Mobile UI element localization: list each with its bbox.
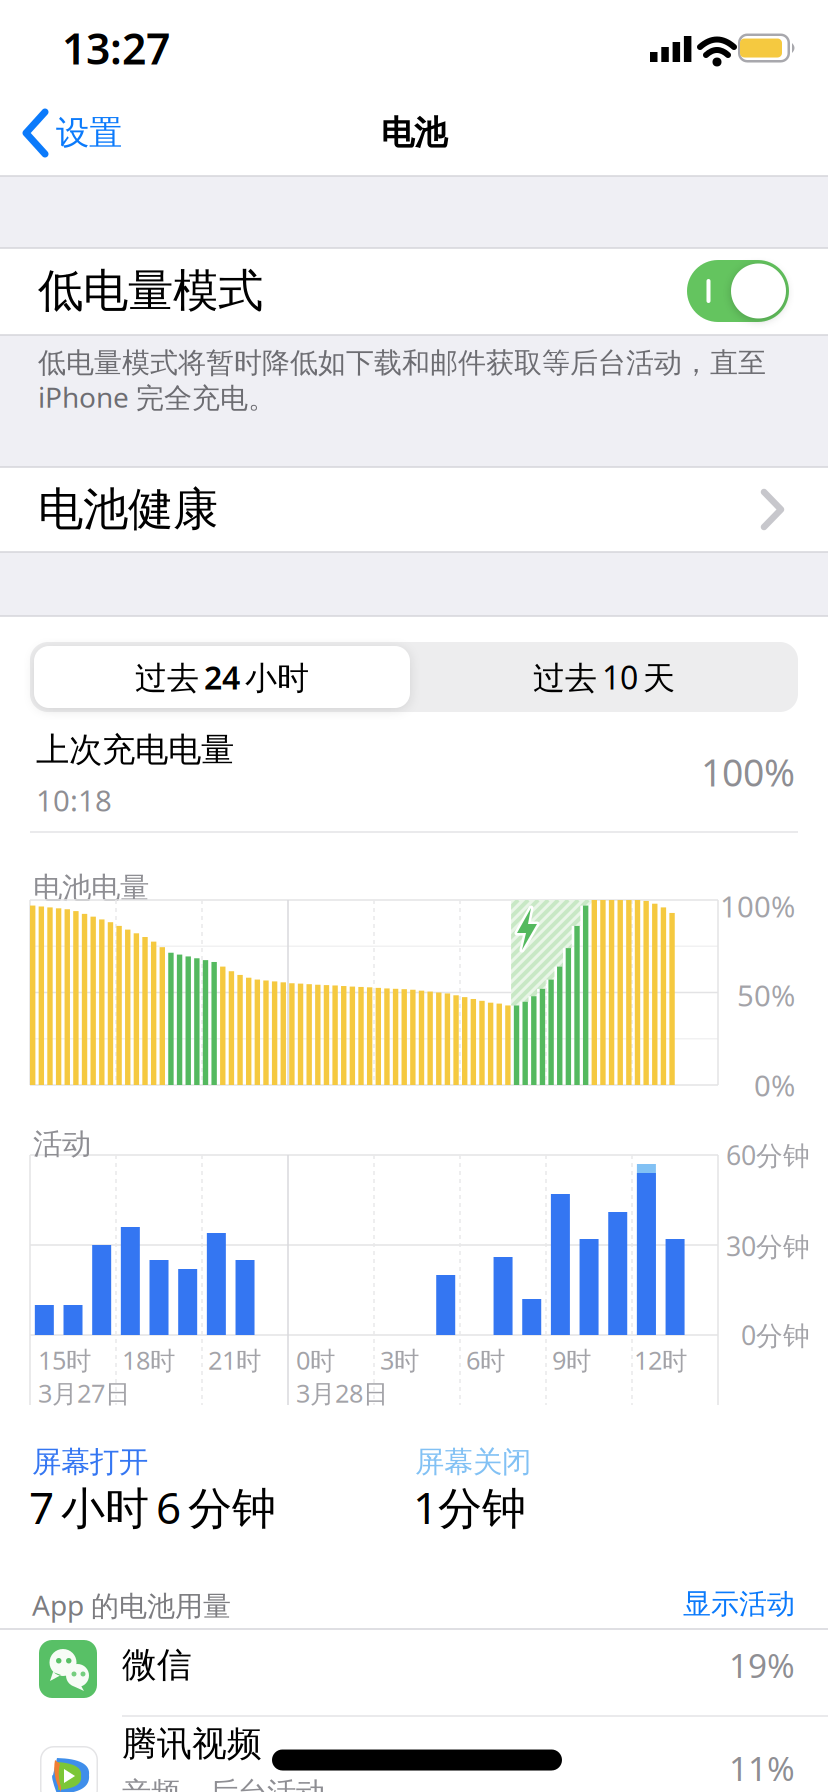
staticText: 显示活动 — [683, 1587, 795, 1621]
staticText: 50% — [737, 975, 795, 1014]
button[interactable]: 低电量模式 — [687, 260, 789, 322]
staticText: 10:18 — [36, 780, 112, 819]
staticText: 13:27 — [62, 20, 170, 76]
staticText: 过去 10 天 — [533, 656, 675, 698]
staticText: 6时 — [466, 1343, 505, 1377]
staticText: 0时 — [296, 1343, 335, 1377]
button[interactable]: 过去 24 小时 — [34, 646, 410, 708]
staticText: 0% — [754, 1065, 795, 1104]
staticText: 30分钟 — [726, 1228, 810, 1264]
button[interactable]: 过去 10 天 — [414, 646, 794, 708]
staticText: iPhone 完全充电。 — [38, 378, 276, 416]
staticText: 9时 — [552, 1343, 591, 1377]
staticText: 11% — [729, 1746, 795, 1790]
staticText: 屏幕关闭 — [415, 1444, 531, 1480]
staticText: 60分钟 — [726, 1137, 810, 1173]
staticText: 低电量模式 — [38, 263, 263, 319]
staticText: 屏幕打开 — [32, 1444, 148, 1480]
staticText: 1分钟 — [413, 1478, 526, 1536]
button[interactable]: 电池健康 — [0, 467, 828, 552]
staticText: 21时 — [208, 1343, 261, 1377]
staticText: 3时 — [380, 1343, 419, 1377]
staticText: 电池健康 — [38, 482, 218, 537]
staticText: 电池 — [381, 112, 447, 153]
staticText: 15时 — [38, 1343, 91, 1377]
staticText: 设置 — [56, 112, 122, 153]
staticText: 音频、后台活动 — [122, 1775, 325, 1792]
staticText: 活动 — [33, 1126, 91, 1162]
staticText: App 的电池用量 — [32, 1586, 231, 1624]
staticText: 微信 — [122, 1644, 192, 1686]
button[interactable]: 腾讯视频 — [0, 1722, 828, 1792]
staticText: 过去 24 小时 — [135, 656, 309, 698]
staticText: 3月28日 — [296, 1376, 388, 1410]
staticText: 12时 — [634, 1343, 687, 1377]
staticText: 低电量模式将暂时降低如下载和邮件获取等后台活动，直至 — [38, 346, 766, 380]
staticText: 19% — [729, 1643, 795, 1687]
staticText: 100% — [701, 747, 795, 797]
staticText: 电池电量 — [33, 870, 149, 906]
button[interactable]: 微信 — [0, 1629, 828, 1717]
staticText: 3月27日 — [38, 1376, 130, 1410]
staticText: 腾讯视频 — [122, 1723, 262, 1765]
staticText: 100% — [720, 886, 795, 925]
staticText: 7 小时 6 分钟 — [29, 1478, 276, 1536]
staticText: 18时 — [122, 1343, 175, 1377]
staticText: 0分钟 — [741, 1317, 810, 1353]
button[interactable]: 显示活动 — [595, 1587, 795, 1621]
button[interactable]: 设置 — [26, 112, 122, 154]
staticText: 上次充电电量 — [36, 729, 234, 770]
